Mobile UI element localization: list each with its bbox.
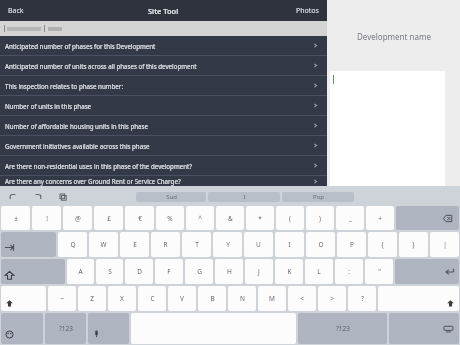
button[interactable]: % bbox=[156, 206, 184, 230]
button[interactable]: ?123 bbox=[298, 313, 387, 344]
button[interactable]: > bbox=[318, 286, 346, 311]
button[interactable]: Undo bbox=[6, 190, 20, 204]
button[interactable]: shift bbox=[1, 259, 65, 284]
button[interactable]: : bbox=[335, 259, 363, 284]
button[interactable]: I bbox=[208, 192, 280, 202]
button[interactable]: Pop bbox=[282, 192, 354, 202]
button[interactable]: hide bbox=[389, 313, 459, 344]
button[interactable]: ^ bbox=[186, 206, 214, 230]
button[interactable]: A bbox=[67, 259, 94, 284]
button[interactable]: backspace bbox=[396, 206, 459, 230]
button[interactable]: < bbox=[288, 286, 316, 311]
staticText: W bbox=[100, 240, 107, 249]
button[interactable]: Government initiatives available across … bbox=[0, 136, 327, 155]
staticText: T bbox=[195, 240, 199, 249]
button[interactable]: emoji bbox=[1, 313, 43, 344]
button[interactable]: Sud bbox=[136, 192, 206, 202]
button[interactable]: | bbox=[430, 232, 459, 257]
button[interactable]: T bbox=[182, 232, 211, 257]
button[interactable]: S bbox=[96, 259, 123, 284]
button[interactable]: + bbox=[366, 206, 394, 230]
button[interactable]: _ bbox=[336, 206, 364, 230]
button[interactable]: C bbox=[138, 286, 166, 311]
button[interactable]: B bbox=[198, 286, 226, 311]
button[interactable]: P bbox=[337, 232, 366, 257]
button[interactable]: } bbox=[399, 232, 428, 257]
button[interactable]: D bbox=[125, 259, 153, 284]
button[interactable]: ) bbox=[306, 206, 334, 230]
staticText: ± bbox=[14, 214, 18, 223]
button[interactable]: This inspection relates to phase number: bbox=[0, 76, 327, 95]
button[interactable]: Q bbox=[58, 232, 87, 257]
button[interactable]: shiftup bbox=[1, 286, 46, 311]
staticText: @ bbox=[75, 214, 81, 223]
staticText: { bbox=[381, 240, 384, 249]
button[interactable]: Photos bbox=[292, 3, 323, 19]
button[interactable]: ± bbox=[1, 206, 30, 230]
button[interactable]: Z bbox=[78, 286, 106, 311]
staticText: Y bbox=[226, 240, 230, 249]
button[interactable]: £ bbox=[94, 206, 123, 230]
button[interactable]: N bbox=[228, 286, 256, 311]
staticText: " bbox=[378, 267, 381, 276]
button[interactable]: ? bbox=[348, 286, 376, 311]
button[interactable]: F bbox=[155, 259, 183, 284]
button[interactable] bbox=[330, 71, 445, 186]
button[interactable]: Anticipated number of phases for this De… bbox=[0, 36, 327, 55]
button[interactable]: L bbox=[305, 259, 333, 284]
staticText: O bbox=[318, 240, 324, 249]
button[interactable]: & bbox=[216, 206, 244, 230]
button[interactable]: { bbox=[368, 232, 397, 257]
button[interactable]: return bbox=[395, 259, 459, 284]
staticText: & bbox=[228, 214, 233, 223]
button[interactable]: ( bbox=[276, 206, 304, 230]
button[interactable]: X bbox=[108, 286, 136, 311]
staticText: } bbox=[412, 240, 415, 249]
button[interactable]: Redo bbox=[31, 190, 45, 204]
button[interactable]: H bbox=[215, 259, 243, 284]
button[interactable]: K bbox=[275, 259, 303, 284]
staticText: D bbox=[137, 267, 142, 276]
button[interactable]: Number of affordable housing units in th… bbox=[0, 116, 327, 135]
staticText: < bbox=[300, 294, 304, 303]
staticText: | bbox=[443, 240, 447, 249]
button[interactable]: I bbox=[275, 232, 304, 257]
button[interactable]: R bbox=[151, 232, 180, 257]
button[interactable]: V bbox=[168, 286, 196, 311]
button[interactable]: * bbox=[246, 206, 274, 230]
staticText: B bbox=[210, 294, 215, 303]
staticText: K bbox=[287, 267, 292, 276]
button[interactable]: Back bbox=[4, 3, 28, 19]
button[interactable]: Are there any concerns over Ground Rent … bbox=[0, 176, 327, 186]
button[interactable]: Anticipated number of units across all p… bbox=[0, 56, 327, 75]
button[interactable]: J bbox=[245, 259, 273, 284]
staticText: € bbox=[138, 214, 142, 223]
button[interactable]: O bbox=[306, 232, 335, 257]
staticText: This inspection relates to phase number: bbox=[5, 82, 124, 90]
staticText: Site Tool bbox=[148, 6, 179, 16]
staticText: Pop bbox=[313, 193, 324, 201]
button[interactable]: U bbox=[244, 232, 273, 257]
button[interactable]: ! bbox=[32, 206, 61, 230]
button[interactable]: G bbox=[185, 259, 213, 284]
staticText: V bbox=[180, 294, 184, 303]
button[interactable]: E bbox=[120, 232, 149, 257]
button[interactable]: ~ bbox=[48, 286, 76, 311]
button[interactable]: tab bbox=[1, 232, 56, 257]
button[interactable]: W bbox=[89, 232, 118, 257]
button[interactable]: " bbox=[365, 259, 393, 284]
button[interactable]: shiftup2 bbox=[378, 286, 459, 311]
button[interactable]: mic bbox=[88, 313, 129, 344]
button[interactable]: € bbox=[125, 206, 154, 230]
button[interactable]: @ bbox=[63, 206, 92, 230]
staticText: E bbox=[133, 240, 137, 249]
staticText: ^ bbox=[198, 214, 202, 223]
button[interactable]: Number of units in this phase bbox=[0, 96, 327, 115]
button[interactable]: Y bbox=[213, 232, 242, 257]
button[interactable]: Are there non-residential uses in this p… bbox=[0, 156, 327, 175]
button[interactable]: M bbox=[258, 286, 286, 311]
staticText: : bbox=[348, 267, 350, 276]
button[interactable]: Paste bbox=[56, 190, 70, 204]
button[interactable]: ?123 bbox=[45, 313, 86, 344]
